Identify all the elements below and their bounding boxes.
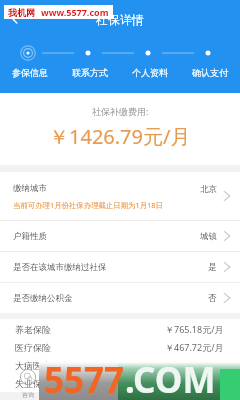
button[interactable]: 个人资料: [120, 67, 180, 78]
staticText: 医疗保险: [15, 342, 51, 353]
staticText: ￥765.18元/月: [165, 323, 224, 335]
staticText: 否: [208, 293, 217, 304]
staticText: .COM: [125, 356, 216, 394]
button[interactable]: Back: [4, 8, 26, 30]
button[interactable]: 户籍性质: [0, 221, 240, 251]
staticText: ￥28.33元/月: [170, 377, 224, 389]
staticText: 大病医疗保险: [15, 360, 69, 371]
staticText: 失业保险: [15, 378, 51, 389]
staticText: 养老保险: [15, 324, 51, 335]
staticText: ￥467.72元/月: [165, 341, 224, 353]
staticText: 5577: [44, 356, 125, 394]
staticText: 是否缴纳公积金: [13, 293, 73, 304]
staticText: 咨询: [22, 391, 34, 399]
staticText: 个人资料: [132, 67, 168, 78]
button[interactable]: 是否缴纳公积金: [0, 283, 240, 313]
button[interactable]: 参保信息: [0, 67, 60, 78]
staticText: ￥1426.79元/月: [49, 123, 191, 150]
staticText: 户籍性质: [13, 231, 47, 242]
staticText: 是否在该城市缴纳过社保: [13, 262, 107, 273]
button[interactable]: 确认支付: [180, 67, 240, 78]
button[interactable]: 是否在该城市缴纳过社保: [0, 252, 240, 282]
staticText: 社保补缴费用:: [92, 105, 149, 117]
staticText: 当前可办理1月份社保办理截止日期为1月18日: [13, 200, 163, 210]
staticText: ￥46.52元/月: [170, 359, 224, 371]
staticText: 社保详情: [96, 12, 144, 27]
staticText: 参保信息: [12, 67, 48, 78]
staticText: 我机网: [8, 7, 35, 18]
staticText: 确认支付: [192, 67, 228, 78]
button[interactable]: 联系方式: [60, 67, 120, 78]
button[interactable]: Consult: [18, 359, 38, 399]
staticText: 联系方式: [72, 67, 108, 78]
staticText: 北京: [200, 184, 217, 195]
button[interactable]: 缴纳城市: [0, 172, 240, 220]
staticText: 缴纳城市: [13, 183, 47, 194]
staticText: 城镇: [200, 231, 217, 242]
staticText: www.5577.com: [41, 6, 109, 18]
staticText: 是: [208, 262, 217, 273]
